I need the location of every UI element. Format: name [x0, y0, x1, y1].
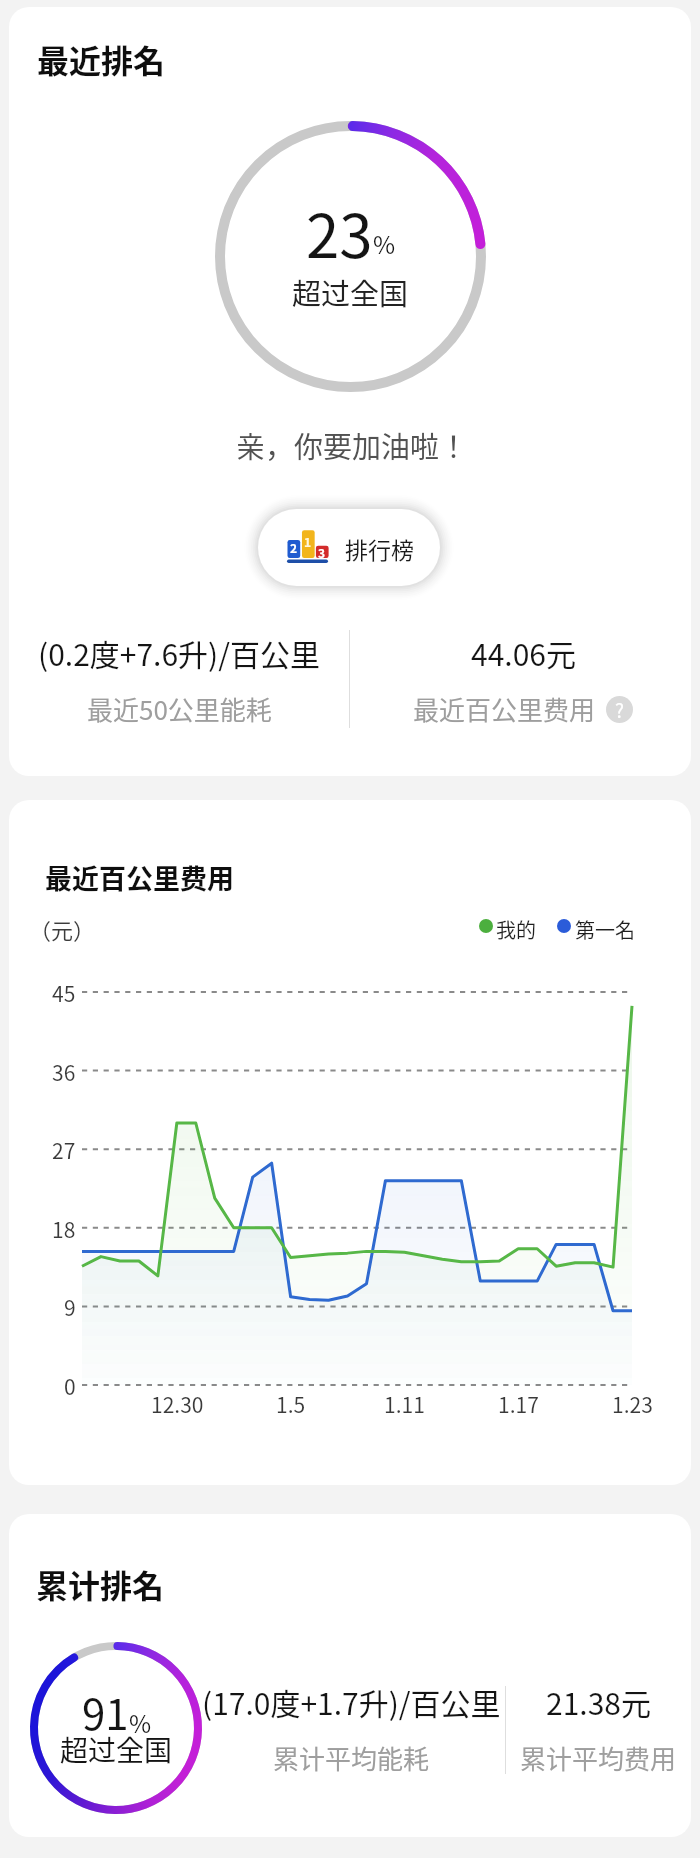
staticText: 21.38元 [546, 1680, 651, 1723]
staticText: 9 [64, 1292, 76, 1320]
staticText: 1.11 [384, 1389, 425, 1419]
staticText: 1.5 [276, 1389, 306, 1419]
staticText: 44.06元 [471, 631, 576, 674]
staticText: （元） [29, 913, 96, 945]
staticText: 12.30 [151, 1389, 204, 1419]
staticText: 3 [318, 544, 326, 558]
staticText: 最近50公里能耗 [87, 690, 272, 728]
staticText: (0.2度+7.6升)/百公里 [38, 631, 320, 674]
staticText: 18 [52, 1214, 76, 1242]
staticText: 最近排名 [37, 36, 166, 82]
staticText: 排行榜 [345, 532, 414, 565]
staticText: 27 [52, 1135, 76, 1163]
staticText: 1.17 [498, 1389, 539, 1419]
button[interactable]: Help [606, 696, 633, 723]
staticText: 1 [304, 533, 312, 547]
staticText: % [129, 1705, 152, 1740]
staticText: 累计平均费用 [520, 1739, 677, 1777]
staticText: (17.0度+1.7升)/百公里 [202, 1680, 501, 1723]
staticText: 最近百公里费用 [45, 858, 234, 897]
staticText: 累计平均能耗 [273, 1739, 430, 1777]
staticText: 23 [306, 188, 373, 275]
staticText: 最近百公里费用 [413, 690, 596, 728]
staticText: 2 [290, 539, 298, 553]
staticText: 91 [82, 1681, 129, 1742]
staticText: 超过全国 [292, 271, 409, 313]
button[interactable]: 2 [258, 509, 440, 586]
staticText: 36 [52, 1057, 76, 1085]
staticText: 累计排名 [36, 1561, 165, 1607]
staticText: % [373, 226, 396, 261]
staticText: 亲，你要加油啦！ [236, 424, 469, 466]
staticText: 1.23 [612, 1389, 653, 1419]
staticText: 超过全国 [60, 1729, 173, 1770]
staticText: 45 [52, 978, 76, 1006]
staticText: 我的 [496, 915, 536, 944]
staticText: 第一名 [575, 915, 635, 944]
staticText: 0 [64, 1371, 76, 1399]
staticText: ? [615, 696, 625, 723]
